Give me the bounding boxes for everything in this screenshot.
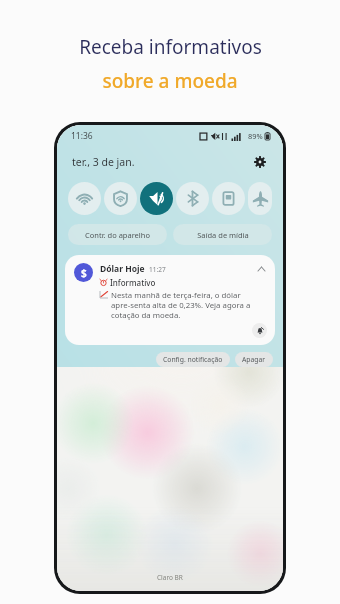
button[interactable]: Contr. do aparelho (68, 224, 167, 245)
button[interactable]: Silence notification (252, 323, 267, 338)
staticText: ter., 3 de jan. (72, 155, 135, 169)
button[interactable]: Bluetooth (176, 182, 209, 215)
staticText: Config. notificação (163, 355, 223, 364)
staticText: Apagar (242, 355, 266, 364)
staticText: Dólar Hoje (100, 263, 145, 275)
button[interactable]: Apagar (235, 352, 273, 367)
staticText: sobre a moeda (102, 68, 238, 94)
staticText: Saída de mídia (197, 230, 249, 240)
button[interactable]: Mute (140, 182, 173, 215)
button[interactable]: Settings (251, 153, 269, 171)
staticText: 11:27 (149, 265, 166, 274)
button[interactable]: Wi-Fi (68, 182, 101, 215)
staticText: Informativo (110, 277, 156, 288)
staticText: 89% (248, 131, 263, 141)
button[interactable]: SIM (212, 182, 245, 215)
staticText: Receba informativos (79, 34, 262, 60)
button[interactable]: Airplane mode (248, 182, 272, 215)
button[interactable]: Collapse (256, 263, 267, 274)
button[interactable]: Config. notificação (156, 352, 230, 367)
staticText: Claro BR (157, 573, 183, 582)
button[interactable]: Saída de mídia (173, 224, 272, 245)
staticText: Nesta manhã de terça-feira, o dólar apre… (111, 290, 253, 320)
staticText: $ (81, 266, 87, 280)
button[interactable]: VPN (104, 182, 137, 215)
staticText: Contr. do aparelho (85, 230, 150, 240)
staticText: 11:36 (71, 130, 93, 142)
button[interactable]: $ (65, 255, 275, 345)
